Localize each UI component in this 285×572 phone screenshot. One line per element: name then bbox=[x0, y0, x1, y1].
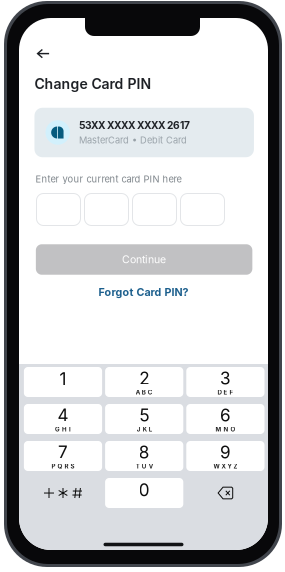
staticText: 53XX XXXX XXXX 2617 bbox=[79, 119, 190, 132]
staticText: Enter your current card PIN here bbox=[35, 173, 181, 185]
button[interactable] bbox=[84, 193, 128, 225]
button[interactable]: 8 bbox=[105, 441, 183, 471]
staticText: MasterCard • Debit Card bbox=[79, 135, 187, 146]
staticText: 8 bbox=[139, 442, 150, 463]
staticText: 1 bbox=[59, 369, 66, 389]
staticText: W X Y Z bbox=[213, 463, 237, 470]
staticText: P Q R S bbox=[51, 463, 74, 470]
button[interactable]: 9 bbox=[186, 441, 264, 471]
staticText: 7 bbox=[58, 442, 68, 463]
staticText: 2 bbox=[139, 368, 149, 389]
button[interactable]: Back bbox=[26, 41, 60, 67]
staticText: 5 bbox=[139, 405, 149, 426]
button[interactable]: 7 bbox=[24, 441, 102, 471]
staticText: 4 bbox=[57, 405, 68, 426]
button[interactable]: 5 bbox=[105, 404, 183, 434]
button[interactable]: 6 bbox=[186, 404, 264, 434]
staticText: D E F bbox=[217, 389, 233, 396]
button[interactable]: Delete bbox=[186, 478, 264, 508]
button[interactable]: 0 bbox=[105, 478, 183, 508]
button[interactable]: 4 bbox=[24, 404, 102, 434]
button[interactable]: Symbols bbox=[24, 478, 102, 508]
button[interactable] bbox=[180, 193, 224, 225]
staticText: 6 bbox=[220, 405, 231, 426]
button[interactable]: 3 bbox=[186, 367, 264, 397]
button[interactable]: 1 bbox=[24, 367, 102, 397]
staticText: Forgot Card PIN? bbox=[98, 285, 188, 298]
button[interactable]: Continue bbox=[36, 244, 252, 275]
staticText: A B C bbox=[136, 389, 153, 396]
staticText: Change Card PIN bbox=[34, 75, 151, 92]
staticText: G H I bbox=[55, 426, 71, 433]
staticText: Continue bbox=[122, 253, 166, 266]
button[interactable]: 53XX XXXX XXXX 2617 bbox=[34, 108, 254, 157]
staticText: 9 bbox=[220, 442, 231, 463]
button[interactable]: Forgot Card PIN? bbox=[73, 283, 213, 301]
staticText: 0 bbox=[139, 480, 150, 500]
staticText: T U V bbox=[136, 463, 153, 470]
button[interactable] bbox=[132, 193, 176, 225]
button[interactable] bbox=[36, 193, 80, 225]
staticText: M N O bbox=[215, 426, 235, 433]
staticText: 3 bbox=[220, 368, 231, 389]
button[interactable]: 2 bbox=[105, 367, 183, 397]
staticText: J K L bbox=[137, 426, 152, 433]
